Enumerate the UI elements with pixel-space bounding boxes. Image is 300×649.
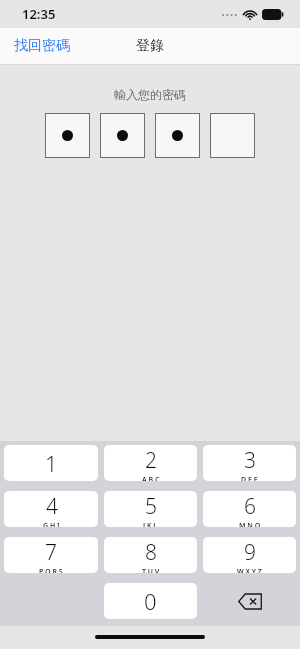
staticText: 6 xyxy=(244,492,256,521)
button[interactable]: 3 xyxy=(203,445,296,481)
staticText: G H I xyxy=(43,521,60,527)
button[interactable]: 5 xyxy=(104,491,197,527)
staticText: 5 xyxy=(145,492,157,521)
staticText: D E F xyxy=(241,475,258,481)
button[interactable]: 4 xyxy=(4,491,98,527)
button[interactable] xyxy=(210,113,255,158)
staticText: 4 xyxy=(46,492,58,521)
button[interactable]: 找回密碼 xyxy=(0,31,84,61)
staticText: 3 xyxy=(244,446,256,475)
button[interactable]: Delete xyxy=(203,583,296,619)
button[interactable] xyxy=(100,113,145,158)
staticText: 7 xyxy=(45,538,57,567)
button[interactable]: 2 xyxy=(104,445,197,481)
staticText: 9 xyxy=(244,538,256,567)
button[interactable]: 6 xyxy=(203,491,296,527)
staticText: 1 xyxy=(45,448,58,478)
staticText: 找回密碼 xyxy=(14,37,70,55)
button[interactable] xyxy=(155,113,200,158)
button[interactable]: 1 xyxy=(4,445,98,481)
staticText: P Q R S xyxy=(39,567,63,573)
staticText: 2 xyxy=(145,446,157,475)
button[interactable]: 9 xyxy=(203,537,296,573)
staticText: J K L xyxy=(143,521,158,527)
staticText: 登錄 xyxy=(136,37,164,55)
staticText: A B C xyxy=(142,475,160,481)
button[interactable]: 0 xyxy=(104,583,197,619)
button[interactable]: 8 xyxy=(104,537,197,573)
staticText: 8 xyxy=(145,538,157,567)
staticText: 0 xyxy=(144,586,157,616)
staticText: T U V xyxy=(142,567,160,573)
staticText: M N O xyxy=(239,521,261,527)
button[interactable] xyxy=(45,113,90,158)
button[interactable]: 7 xyxy=(4,537,98,573)
staticText: 輸入您的密碼 xyxy=(0,87,300,102)
staticText: W X Y Z xyxy=(237,567,262,573)
staticText: 12:35 xyxy=(22,5,56,23)
